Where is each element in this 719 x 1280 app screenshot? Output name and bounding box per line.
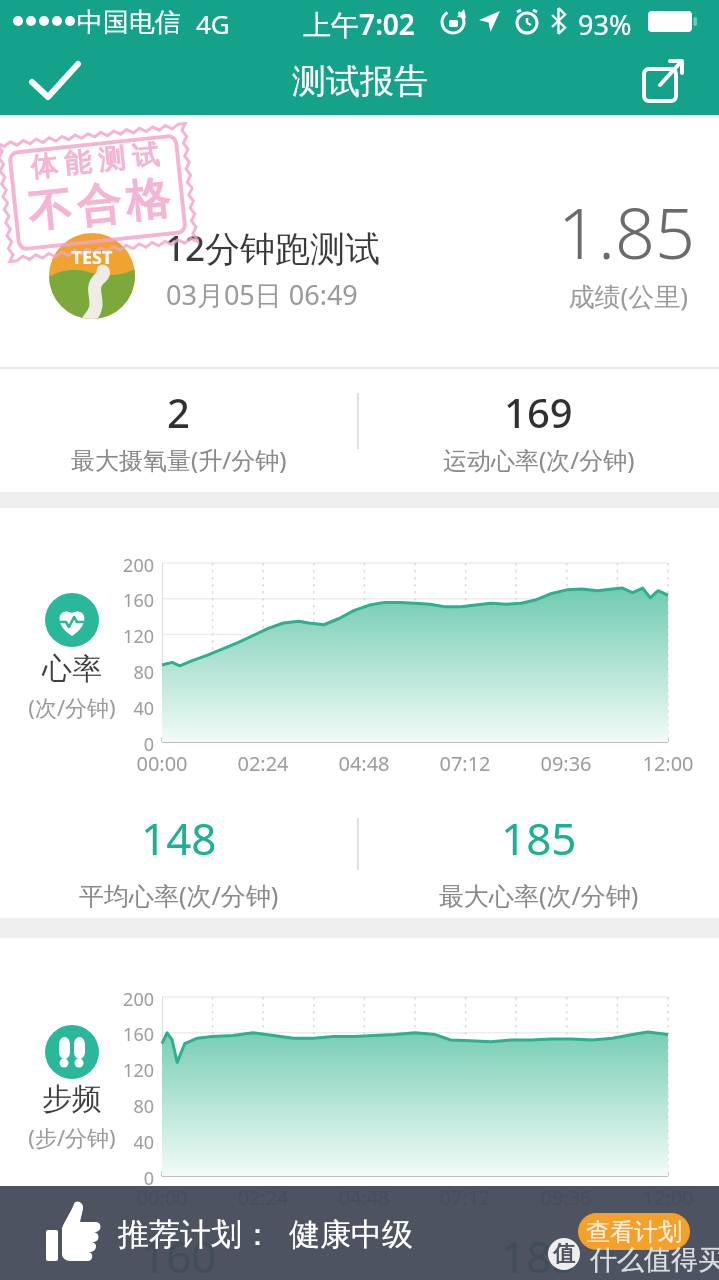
staticText: (次/分钟) [22,692,122,722]
button[interactable] [630,55,698,107]
staticText: 07:12 [425,1184,505,1211]
staticText: 80 [110,660,154,685]
staticText: 4G [196,6,230,41]
staticText: 120 [110,1058,154,1083]
staticText: 93% [578,6,632,43]
staticText: TEST [64,245,120,270]
staticText: 07:12 [425,750,505,777]
staticText: 09:36 [526,1184,606,1211]
staticText: 中国电信 [77,6,181,39]
staticText: 查看计划 [586,1217,682,1247]
staticText: 185 [501,1226,577,1280]
staticText: 上午7:02 [279,5,439,43]
staticText: 04:48 [324,1184,404,1211]
staticText: 值 [553,1240,575,1268]
staticText: 169 [504,385,573,439]
staticText: 80 [110,1094,154,1119]
staticText: 测试报告 [260,60,460,103]
staticText: 平均心率(次/分钟) [79,878,279,912]
staticText: 160 [141,1226,217,1280]
button[interactable] [20,55,90,107]
staticText: 最大心率(次/分钟) [439,878,639,912]
staticText: 160 [110,1022,154,1047]
staticText: 200 [110,553,154,578]
staticText: 12:00 [628,1184,708,1211]
button[interactable] [0,1186,719,1280]
staticText: 160 [110,588,154,613]
staticText: (步/分钟) [22,1122,122,1152]
staticText: 200 [110,987,154,1012]
staticText: 12:00 [628,750,708,777]
staticText: 不合格 [23,170,175,240]
staticText: 成绩(公里) [428,278,688,314]
staticText: 什么值得买 [590,1243,719,1277]
staticText: 40 [110,1130,154,1155]
staticText: 推荐计划： 健康中级 [118,1212,414,1254]
staticText: 步频 [32,1080,112,1118]
staticText: 0 [110,1166,154,1191]
staticText: 40 [110,696,154,721]
staticText: 185 [501,808,577,868]
staticText: 0 [110,732,154,757]
button[interactable]: 查看计划 [578,1213,690,1250]
staticText: 04:48 [324,750,404,777]
staticText: 00:00 [122,750,202,777]
staticText: 03月05日 06:49 [166,276,358,313]
staticText: 2 [167,385,190,439]
staticText: 最大摄氧量(升/分钟) [71,443,287,476]
staticText: 148 [141,808,217,868]
staticText: 00:00 [122,1184,202,1211]
staticText: 02:24 [223,1184,303,1211]
staticText: 1.85 [430,184,695,279]
staticText: 心率 [32,650,112,688]
staticText: 体能测试 [25,137,164,185]
staticText: 02:24 [223,750,303,777]
staticText: 09:36 [526,750,606,777]
staticText: 120 [110,624,154,649]
staticText: 12分钟跑测试 [165,224,381,272]
staticText: 运动心率(次/分钟) [443,443,635,476]
